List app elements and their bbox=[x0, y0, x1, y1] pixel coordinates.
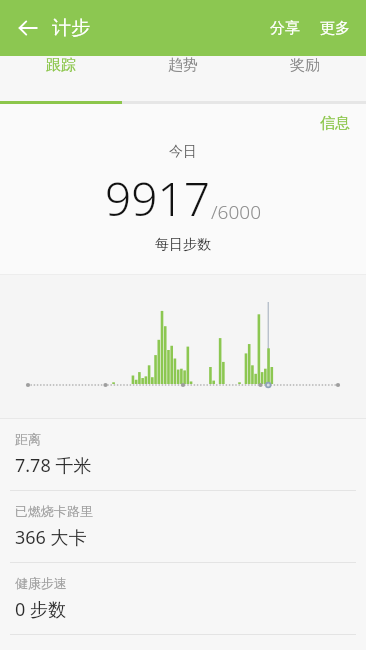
staticText: 已燃烧卡路里 bbox=[15, 503, 93, 519]
button[interactable]: 跟踪 bbox=[0, 56, 122, 75]
staticText: 0 步数 bbox=[15, 597, 66, 622]
staticText: 奖励 bbox=[290, 56, 320, 75]
button[interactable]: 奖励 bbox=[244, 56, 366, 75]
staticText: 趋势 bbox=[168, 56, 198, 75]
button[interactable]: Back bbox=[8, 8, 48, 48]
staticText: 计步 bbox=[52, 16, 90, 40]
staticText: 信息 bbox=[320, 114, 350, 133]
staticText: 分享 bbox=[270, 19, 300, 38]
button[interactable]: 趋势 bbox=[122, 56, 244, 75]
button[interactable]: 分享 bbox=[260, 9, 310, 48]
staticText: 健康步速 bbox=[15, 575, 67, 591]
staticText: /6000 bbox=[211, 199, 261, 225]
staticText: 跟踪 bbox=[46, 56, 76, 75]
button[interactable]: 更多 bbox=[310, 9, 366, 48]
staticText: 更多 bbox=[320, 19, 350, 38]
staticText: 今日 bbox=[0, 143, 366, 161]
button[interactable]: 健康步速 bbox=[0, 563, 366, 634]
button[interactable]: Hourly step chart bbox=[0, 275, 366, 418]
staticText: 366 大卡 bbox=[15, 525, 87, 550]
staticText: 距离 bbox=[15, 431, 41, 447]
staticText: 9917 bbox=[105, 167, 211, 230]
staticText: 7.78 千米 bbox=[15, 453, 92, 478]
button[interactable]: 距离 bbox=[0, 419, 366, 490]
staticText: 每日步数 bbox=[0, 236, 366, 254]
button[interactable]: 信息 bbox=[308, 104, 366, 139]
button[interactable]: 已燃烧卡路里 bbox=[0, 491, 366, 562]
